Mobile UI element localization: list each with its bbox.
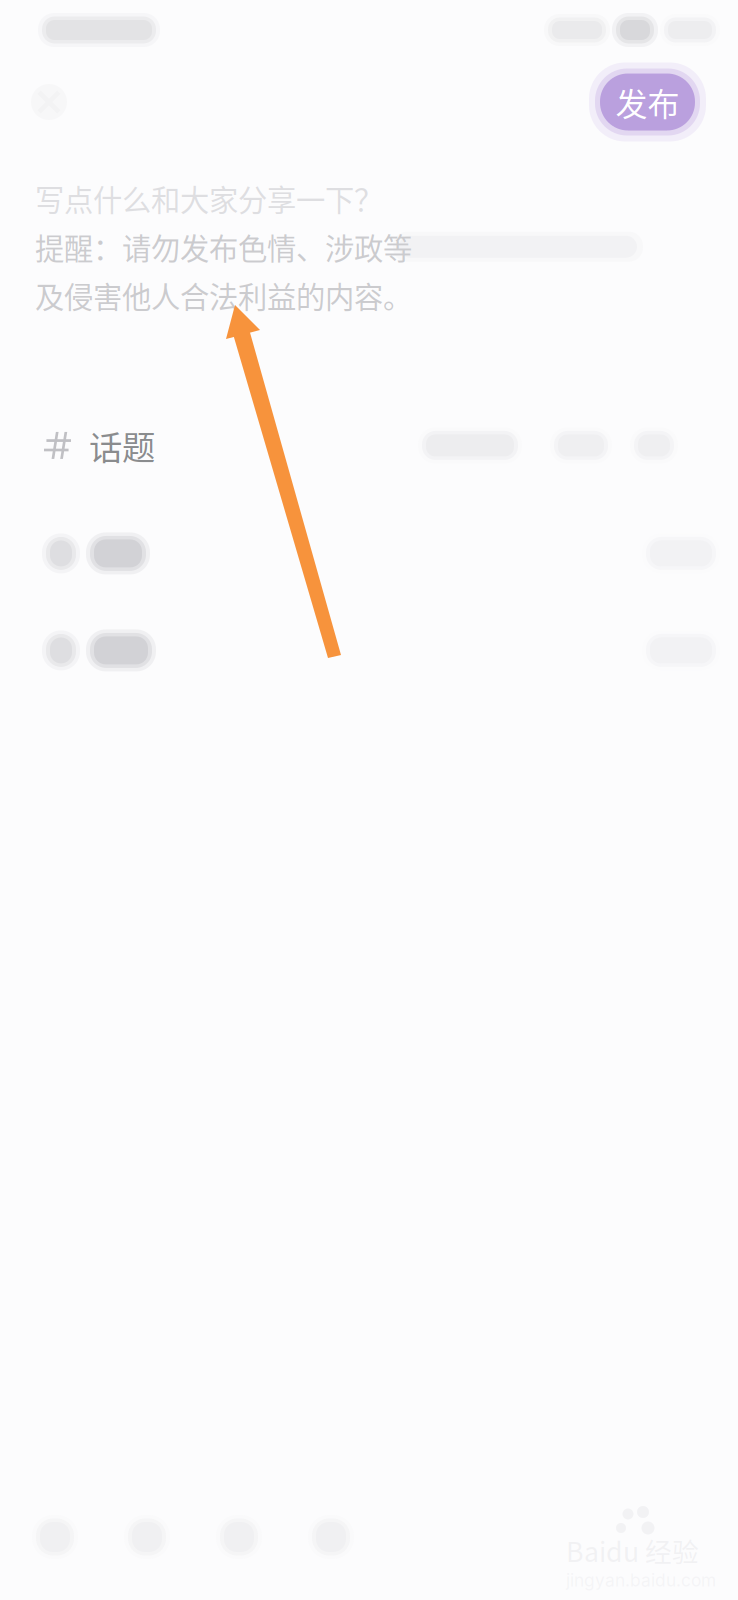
staticText: 发布 [615, 79, 679, 125]
button[interactable]: Mention someone [193, 1502, 285, 1572]
button[interactable]: 话题 [0, 423, 179, 467]
staticText: 写点什么和大家分享一下？ [35, 177, 383, 219]
button[interactable] [0, 531, 738, 575]
staticText: Baidu 经验 [566, 1531, 699, 1570]
button[interactable]: Add emoji [101, 1502, 193, 1572]
button[interactable] [0, 628, 738, 672]
staticText: 提醒：请勿发布色情、涉政等 [35, 225, 412, 268]
staticText: 及侵害他人合法利益的内容。 [35, 274, 412, 316]
button[interactable]: More options [285, 1502, 377, 1572]
button[interactable]: Add photo [9, 1502, 101, 1572]
button[interactable]: 发布 [589, 62, 706, 141]
staticText: 话题 [89, 421, 155, 470]
